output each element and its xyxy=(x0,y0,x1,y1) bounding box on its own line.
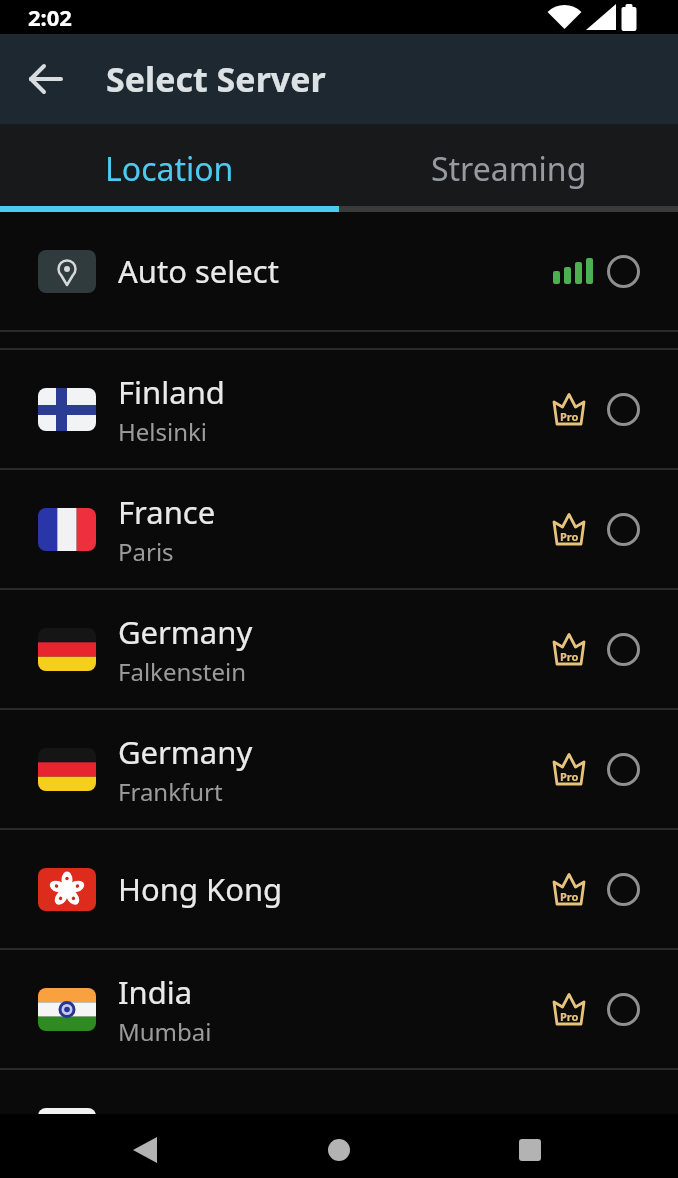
button[interactable] xyxy=(506,1126,554,1174)
button[interactable]: Germany xyxy=(0,590,678,708)
button[interactable]: India xyxy=(0,950,678,1068)
staticText: Falkenstein xyxy=(118,655,247,688)
button[interactable] xyxy=(121,1126,169,1174)
staticText: Pro xyxy=(560,529,579,544)
staticText: Germany xyxy=(118,611,253,653)
staticText: Helsinki xyxy=(118,415,208,448)
staticText: France xyxy=(118,491,216,533)
staticText: Germany xyxy=(118,731,253,773)
staticText: Pro xyxy=(560,889,579,904)
staticText: Location xyxy=(105,147,234,191)
button[interactable]: Germany xyxy=(0,710,678,828)
button[interactable]: Auto select xyxy=(0,212,678,330)
staticText: Finland xyxy=(118,371,225,413)
staticText: Select Server xyxy=(106,56,326,102)
staticText: Mumbai xyxy=(118,1015,212,1048)
staticText: Paris xyxy=(118,535,174,568)
button[interactable]: Location xyxy=(0,132,339,206)
button[interactable] xyxy=(315,1126,363,1174)
staticText: Streaming xyxy=(431,147,587,191)
button[interactable] xyxy=(28,61,64,97)
staticText: Frankfurt xyxy=(118,775,223,808)
button[interactable]: France xyxy=(0,470,678,588)
staticText: Hong Kong xyxy=(118,868,283,910)
staticText: Pro xyxy=(560,649,579,664)
staticText: Pro xyxy=(560,409,579,424)
button[interactable]: Finland xyxy=(0,350,678,468)
staticText: Pro xyxy=(560,1009,579,1024)
staticText: India xyxy=(118,971,193,1013)
button[interactable]: Hong Kong xyxy=(0,830,678,948)
staticText: 2:02 xyxy=(28,2,72,32)
staticText: Auto select xyxy=(118,250,279,292)
staticText: Pro xyxy=(560,769,579,784)
button[interactable]: Streaming xyxy=(339,132,678,206)
